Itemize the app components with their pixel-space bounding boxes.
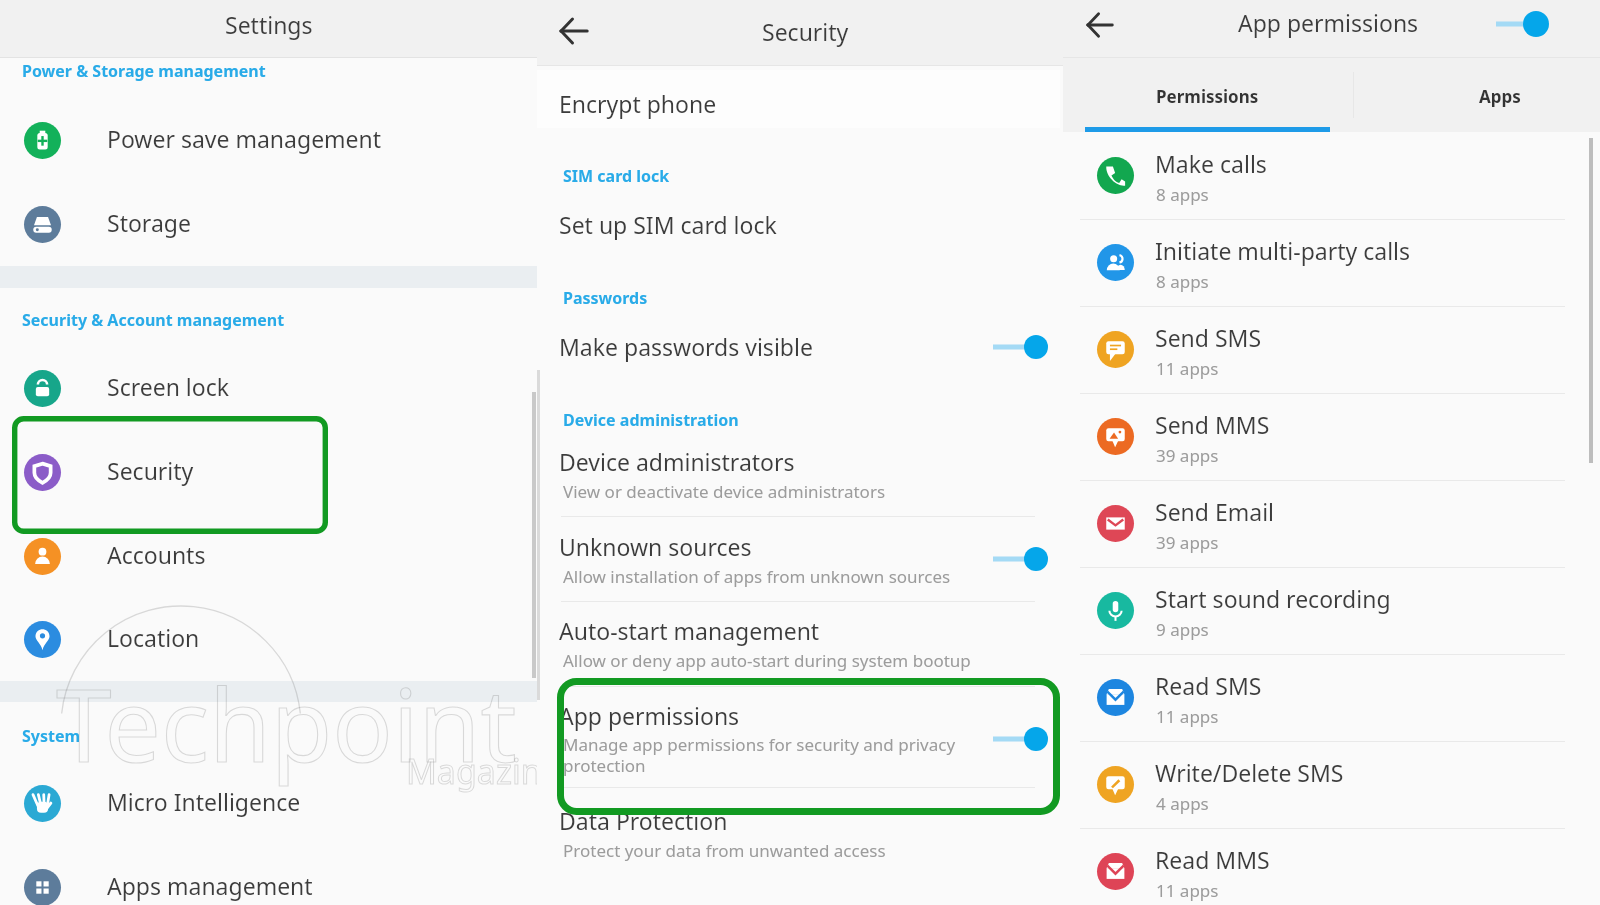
staticText: 11 apps [1156,705,1219,728]
staticText: Initiate multi-party calls [1155,235,1411,266]
staticText: App permissions [1238,7,1419,38]
button[interactable] [537,602,1063,686]
staticText: Encrypt phone [559,88,717,119]
staticText: Unknown sources [559,531,752,562]
button[interactable]: Location [0,597,537,681]
staticText: Settings [225,9,313,40]
staticText: Auto-start management [559,615,820,646]
button[interactable]: Power save management [0,98,537,182]
staticText: Location [107,622,200,653]
button[interactable]: Apps management [0,845,537,905]
button[interactable] [537,788,1063,872]
button[interactable]: Initiate multi-party calls [1063,220,1600,307]
staticText: Send MMS [1155,409,1270,440]
staticText: App permissions [559,700,740,731]
staticText: Screen lock [107,371,230,402]
staticText: Write/Delete SMS [1155,757,1344,788]
button[interactable]: Toggle setting [993,727,1048,751]
button[interactable]: Make calls [1063,133,1600,220]
staticText: SIM card lock [563,165,670,187]
staticText: 11 apps [1156,879,1219,902]
button[interactable]: Send Email [1063,481,1600,568]
button[interactable] [537,432,1063,516]
staticText: System [22,725,81,747]
staticText: 11 apps [1156,357,1219,380]
button[interactable] [537,517,1063,601]
button[interactable]: Micro Intelligence [0,761,537,845]
button[interactable]: Accounts [0,514,537,598]
staticText: Make passwords visible [559,331,813,362]
staticText: Device administrators [559,446,795,477]
staticText: Power save management [107,123,382,154]
staticText: 4 apps [1156,792,1209,815]
staticText: Security [107,455,194,486]
button[interactable] [537,192,1063,250]
staticText: Send Email [1155,496,1275,527]
button[interactable]: Permissions [1063,58,1353,132]
staticText: Security [762,16,849,47]
staticText: Read MMS [1155,844,1270,875]
staticText: 9 apps [1156,618,1209,641]
staticText: View or deactivate device administrators [563,480,886,503]
staticText: Set up SIM card lock [559,209,777,240]
button[interactable]: Read SMS [1063,655,1600,742]
button[interactable]: Read MMS [1063,829,1600,905]
staticText: Send SMS [1155,322,1262,353]
button[interactable]: Toggle setting [993,547,1048,571]
staticText: protection [563,754,646,777]
staticText: Manage app permissions for security and … [563,733,956,756]
button[interactable] [537,70,1063,128]
staticText: 39 apps [1156,531,1219,554]
staticText: Security & Account management [22,309,285,331]
button[interactable]: Send SMS [1063,307,1600,394]
staticText: Make calls [1155,148,1267,179]
staticText: Start sound recording [1155,583,1391,614]
button[interactable]: Start sound recording [1063,568,1600,655]
staticText: Allow installation of apps from unknown … [563,565,951,588]
staticText: Data Protection [559,805,728,836]
staticText: Read SMS [1155,670,1262,701]
staticText: Power & Storage management [22,60,266,82]
staticText: Permissions [1156,85,1259,108]
staticText: 8 apps [1156,183,1209,206]
staticText: 8 apps [1156,270,1209,293]
button[interactable]: Toggle all permissions [1496,11,1549,37]
button[interactable]: Apps [1353,58,1600,132]
staticText: Device administration [563,409,739,431]
staticText: Protect your data from unwanted access [563,839,886,862]
staticText: 39 apps [1156,444,1219,467]
staticText: Apps management [107,870,313,901]
button[interactable]: Storage [0,182,537,266]
staticText: Accounts [107,539,206,570]
button[interactable] [537,314,1063,374]
button[interactable]: Security [0,430,537,514]
staticText: Passwords [563,287,648,309]
button[interactable]: Back [1077,2,1123,48]
button[interactable] [537,687,1063,787]
button[interactable]: Write/Delete SMS [1063,742,1600,829]
button[interactable]: Toggle setting [993,335,1048,359]
button[interactable]: Back [551,8,597,54]
button[interactable]: Screen lock [0,346,537,430]
staticText: Storage [107,207,191,238]
staticText: Micro Intelligence [107,786,301,817]
staticText: Apps [1479,85,1521,108]
staticText: Allow or deny app auto-start during syst… [563,649,971,672]
button[interactable]: Send MMS [1063,394,1600,481]
